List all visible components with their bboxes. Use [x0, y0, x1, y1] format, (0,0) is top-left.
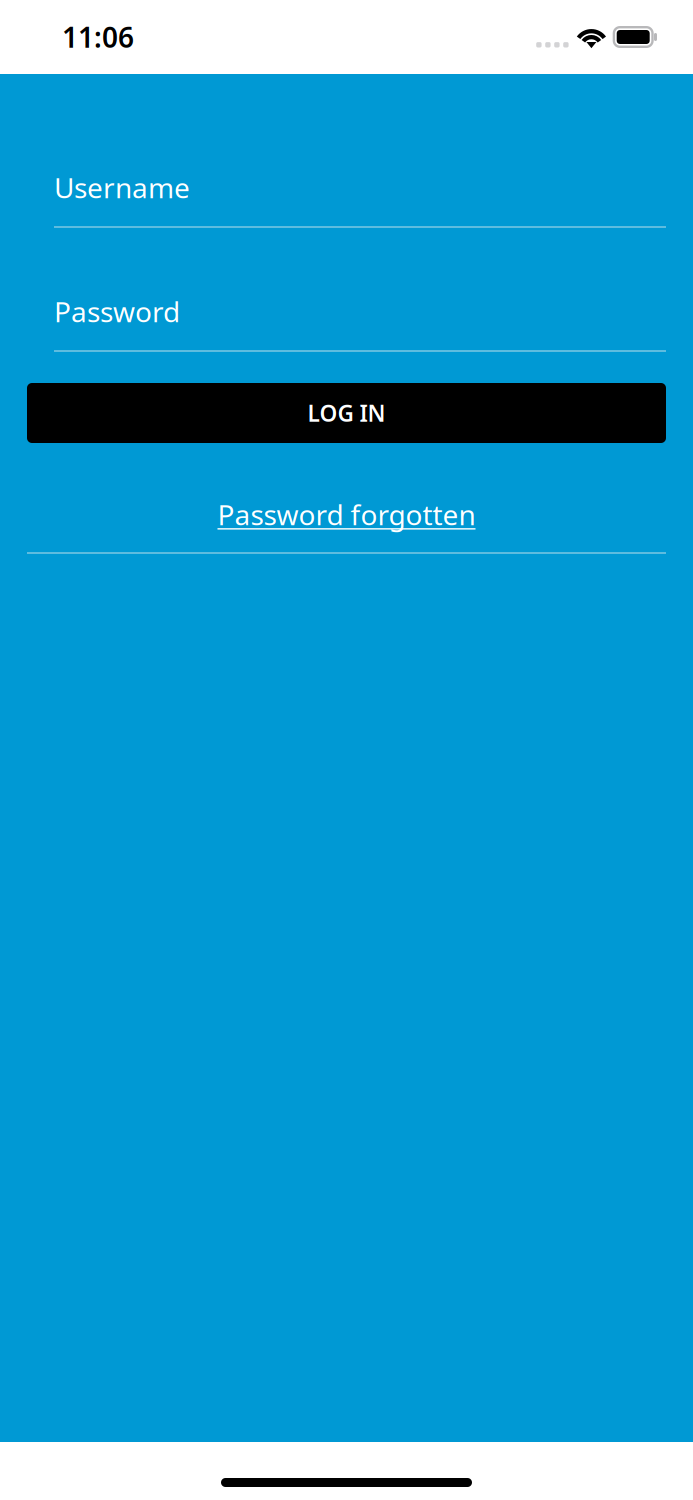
button[interactable]: Password forgotten — [217, 496, 475, 533]
staticText: Password forgotten — [217, 496, 475, 533]
button[interactable]: Username — [54, 169, 666, 228]
staticText: Username — [54, 169, 190, 206]
staticText: Password — [54, 293, 180, 330]
staticText: LOG IN — [307, 398, 385, 428]
staticText: 11:06 — [62, 18, 134, 56]
button[interactable]: Password — [54, 293, 666, 352]
button[interactable]: LOG IN — [27, 383, 666, 443]
